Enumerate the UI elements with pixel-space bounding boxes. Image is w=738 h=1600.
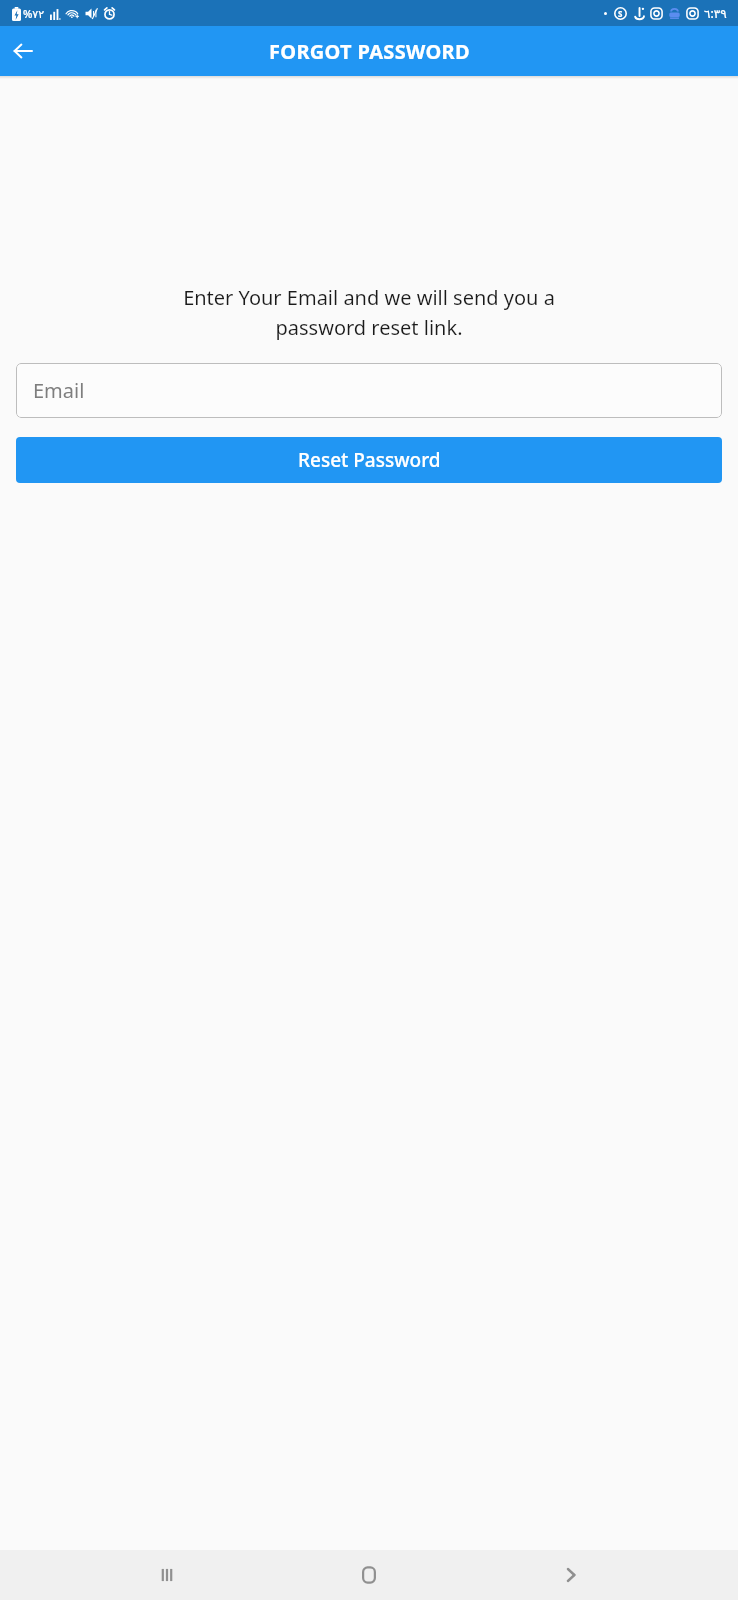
- button[interactable]: Recent apps: [132, 1550, 202, 1600]
- button[interactable]: Back: [7, 35, 39, 67]
- staticText: Reset Password: [298, 447, 441, 473]
- staticText: Email: [33, 377, 85, 404]
- button[interactable]: Home: [334, 1550, 404, 1600]
- button[interactable]: Reset Password: [16, 437, 722, 483]
- staticText: ٦:٣٩: [704, 5, 727, 21]
- staticText: S: [618, 8, 623, 19]
- staticText: %٧٢: [23, 6, 45, 21]
- button[interactable]: Back: [536, 1550, 606, 1600]
- button[interactable]: Email: [16, 363, 722, 418]
- staticText: FORGOT PASSWORD: [269, 38, 470, 65]
- staticText: Enter Your Email and we will send you a …: [8, 284, 730, 341]
